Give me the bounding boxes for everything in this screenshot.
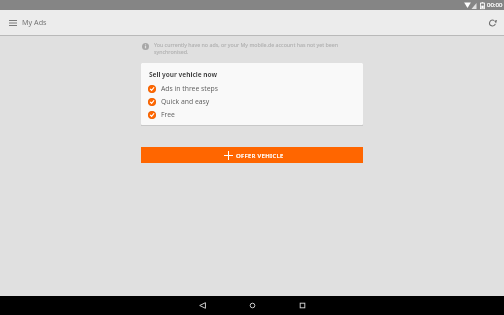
button[interactable]: OFFER VEHICLE bbox=[141, 147, 363, 163]
staticText: Free bbox=[161, 110, 175, 119]
staticText: Ads in three steps bbox=[161, 84, 219, 93]
staticText: OFFER VEHICLE bbox=[236, 152, 284, 160]
button[interactable]: Open navigation menu bbox=[0, 10, 22, 35]
button[interactable]: Recent apps bbox=[287, 296, 317, 315]
staticText: Quick and easy bbox=[161, 97, 210, 106]
staticText: Sell your vehicle now bbox=[149, 70, 217, 79]
staticText: You currently have no ads, or your My mo… bbox=[154, 41, 339, 55]
staticText: My Ads bbox=[22, 17, 47, 27]
button[interactable]: Refresh bbox=[480, 10, 504, 35]
button[interactable]: Back bbox=[187, 296, 217, 315]
staticText: 00:00 bbox=[487, 1, 503, 9]
button[interactable]: Home bbox=[237, 296, 267, 315]
